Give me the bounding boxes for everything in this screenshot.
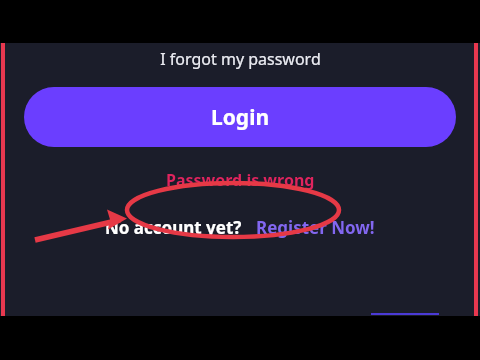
button[interactable]: Login xyxy=(24,87,456,147)
staticText: Password is wrong xyxy=(166,169,315,191)
button[interactable]: Register Now! xyxy=(256,216,375,239)
staticText: No account yet? xyxy=(105,216,242,239)
staticText: Register Now! xyxy=(256,216,375,239)
button[interactable]: No account yet? xyxy=(105,216,242,239)
staticText: I forgot my password xyxy=(160,48,321,70)
button[interactable]: Password is wrong xyxy=(160,165,321,195)
staticText: Login xyxy=(211,103,270,132)
button[interactable]: I forgot my password xyxy=(152,46,329,72)
